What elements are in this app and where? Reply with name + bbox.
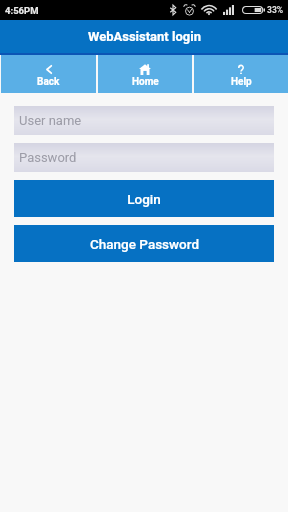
staticText: Home (132, 76, 159, 88)
staticText: 4:56PM (5, 5, 39, 16)
staticText: Login (127, 191, 161, 207)
staticText: Change Password (90, 236, 199, 252)
staticText: Back (37, 76, 60, 88)
button[interactable]: Password (14, 143, 274, 172)
staticText: User name (19, 113, 82, 128)
staticText: WebAssistant login (88, 29, 201, 44)
button[interactable]: Back (1, 55, 96, 93)
staticText: Help (231, 76, 252, 88)
button[interactable]: Login (14, 180, 274, 217)
button[interactable]: Home (98, 55, 192, 93)
button[interactable]: Help (194, 55, 288, 93)
staticText: 33% (267, 5, 284, 15)
button[interactable]: User name (14, 106, 274, 135)
button[interactable]: Change Password (14, 225, 274, 262)
staticText: Password (19, 150, 77, 165)
